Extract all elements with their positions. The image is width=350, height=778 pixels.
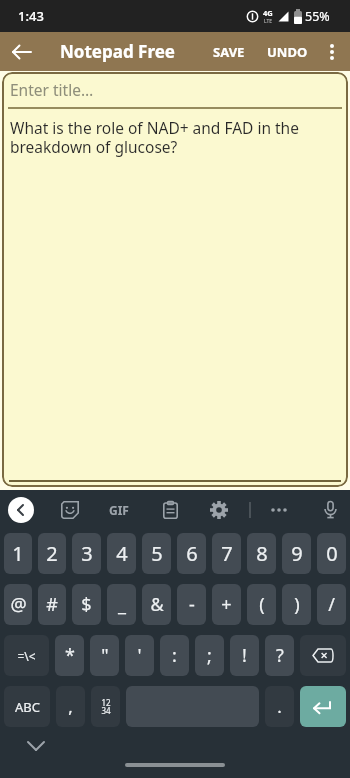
staticText: $ xyxy=(81,592,92,617)
staticText: # xyxy=(46,592,58,617)
staticText: " xyxy=(101,643,109,668)
button[interactable] xyxy=(314,32,350,71)
staticText: @ xyxy=(10,592,27,617)
staticText: Notepad Free xyxy=(60,40,175,63)
staticText: ; xyxy=(207,643,212,668)
button[interactable]: * xyxy=(55,635,84,676)
staticText: 7 xyxy=(221,540,233,567)
button[interactable]: ' xyxy=(125,635,154,676)
button[interactable]: ! xyxy=(230,635,259,676)
button[interactable]: # xyxy=(38,584,66,625)
button[interactable] xyxy=(8,497,34,523)
staticText: GIF xyxy=(109,502,129,518)
staticText: 4 xyxy=(116,540,128,567)
button[interactable] xyxy=(158,498,182,522)
staticText: . xyxy=(277,695,282,718)
staticText: 9 xyxy=(291,540,303,567)
button[interactable]: 1 xyxy=(4,533,32,574)
button[interactable]: 5 xyxy=(142,533,171,574)
button[interactable]: ) xyxy=(282,584,311,625)
staticText: * xyxy=(65,643,75,668)
staticText: 0 xyxy=(326,540,338,567)
button[interactable]: ; xyxy=(195,635,224,676)
button[interactable]: 6 xyxy=(177,533,206,574)
staticText: 4G xyxy=(263,8,273,18)
button[interactable]: 7 xyxy=(212,533,241,574)
button[interactable] xyxy=(0,32,44,71)
button[interactable] xyxy=(58,498,82,522)
button[interactable]: =\< xyxy=(4,635,49,676)
button[interactable]: @ xyxy=(4,584,32,625)
staticText: 5 xyxy=(151,540,163,567)
staticText: 1 xyxy=(12,540,24,567)
button[interactable]: . xyxy=(265,686,294,727)
staticText: ABC xyxy=(15,698,40,716)
button[interactable]: 0 xyxy=(317,533,346,574)
staticText: ? xyxy=(276,643,284,668)
staticText: & xyxy=(150,592,164,617)
button[interactable]: 3 xyxy=(72,533,101,574)
staticText: Enter title… xyxy=(10,79,94,100)
button[interactable]: , xyxy=(56,686,85,727)
staticText: 6 xyxy=(186,540,198,567)
button[interactable]: : xyxy=(160,635,189,676)
staticText: LTE xyxy=(264,18,273,25)
button[interactable]: 12 34 xyxy=(91,686,120,727)
staticText: 2 xyxy=(46,540,58,567)
staticText: _ xyxy=(118,592,126,617)
staticText: 55% xyxy=(305,8,330,25)
button[interactable]: $ xyxy=(72,584,101,625)
staticText: SAVE xyxy=(213,43,245,61)
staticText: =\< xyxy=(17,648,36,664)
staticText: ! xyxy=(242,643,247,668)
staticText: : xyxy=(172,643,177,668)
button[interactable]: What is the role of NAD+ and FAD in the … xyxy=(10,117,299,158)
button[interactable]: SAVE xyxy=(207,32,251,71)
staticText: , xyxy=(68,695,73,718)
button[interactable]: 8 xyxy=(247,533,276,574)
staticText: - xyxy=(189,592,195,617)
button[interactable]: + xyxy=(212,584,241,625)
button[interactable]: 9 xyxy=(282,533,311,574)
button[interactable] xyxy=(318,498,342,522)
button[interactable]: _ xyxy=(107,584,136,625)
button[interactable]: GIF xyxy=(104,498,134,522)
staticText: 1:43 xyxy=(18,7,44,25)
staticText: ( xyxy=(259,592,265,617)
button[interactable]: 4 xyxy=(107,533,136,574)
button[interactable]: ? xyxy=(265,635,294,676)
button[interactable] xyxy=(300,635,346,676)
button[interactable]: Enter title… xyxy=(2,72,348,107)
staticText: / xyxy=(328,592,335,617)
button[interactable]: " xyxy=(90,635,119,676)
button[interactable]: & xyxy=(142,584,171,625)
button[interactable]: ( xyxy=(247,584,276,625)
button[interactable]: - xyxy=(177,584,206,625)
staticText: + xyxy=(221,592,232,617)
button[interactable]: ABC xyxy=(4,686,50,727)
button[interactable]: 2 xyxy=(38,533,66,574)
button[interactable]: UNDO xyxy=(261,32,314,71)
button[interactable]: / xyxy=(317,584,346,625)
button[interactable] xyxy=(300,686,346,727)
staticText: ' xyxy=(137,643,142,668)
button[interactable] xyxy=(207,498,231,522)
staticText: ) xyxy=(294,592,300,617)
staticText: 8 xyxy=(256,540,268,567)
staticText: UNDO xyxy=(267,43,308,61)
button[interactable] xyxy=(267,498,291,522)
staticText: 12 34 xyxy=(101,697,111,716)
staticText: 3 xyxy=(81,540,93,567)
